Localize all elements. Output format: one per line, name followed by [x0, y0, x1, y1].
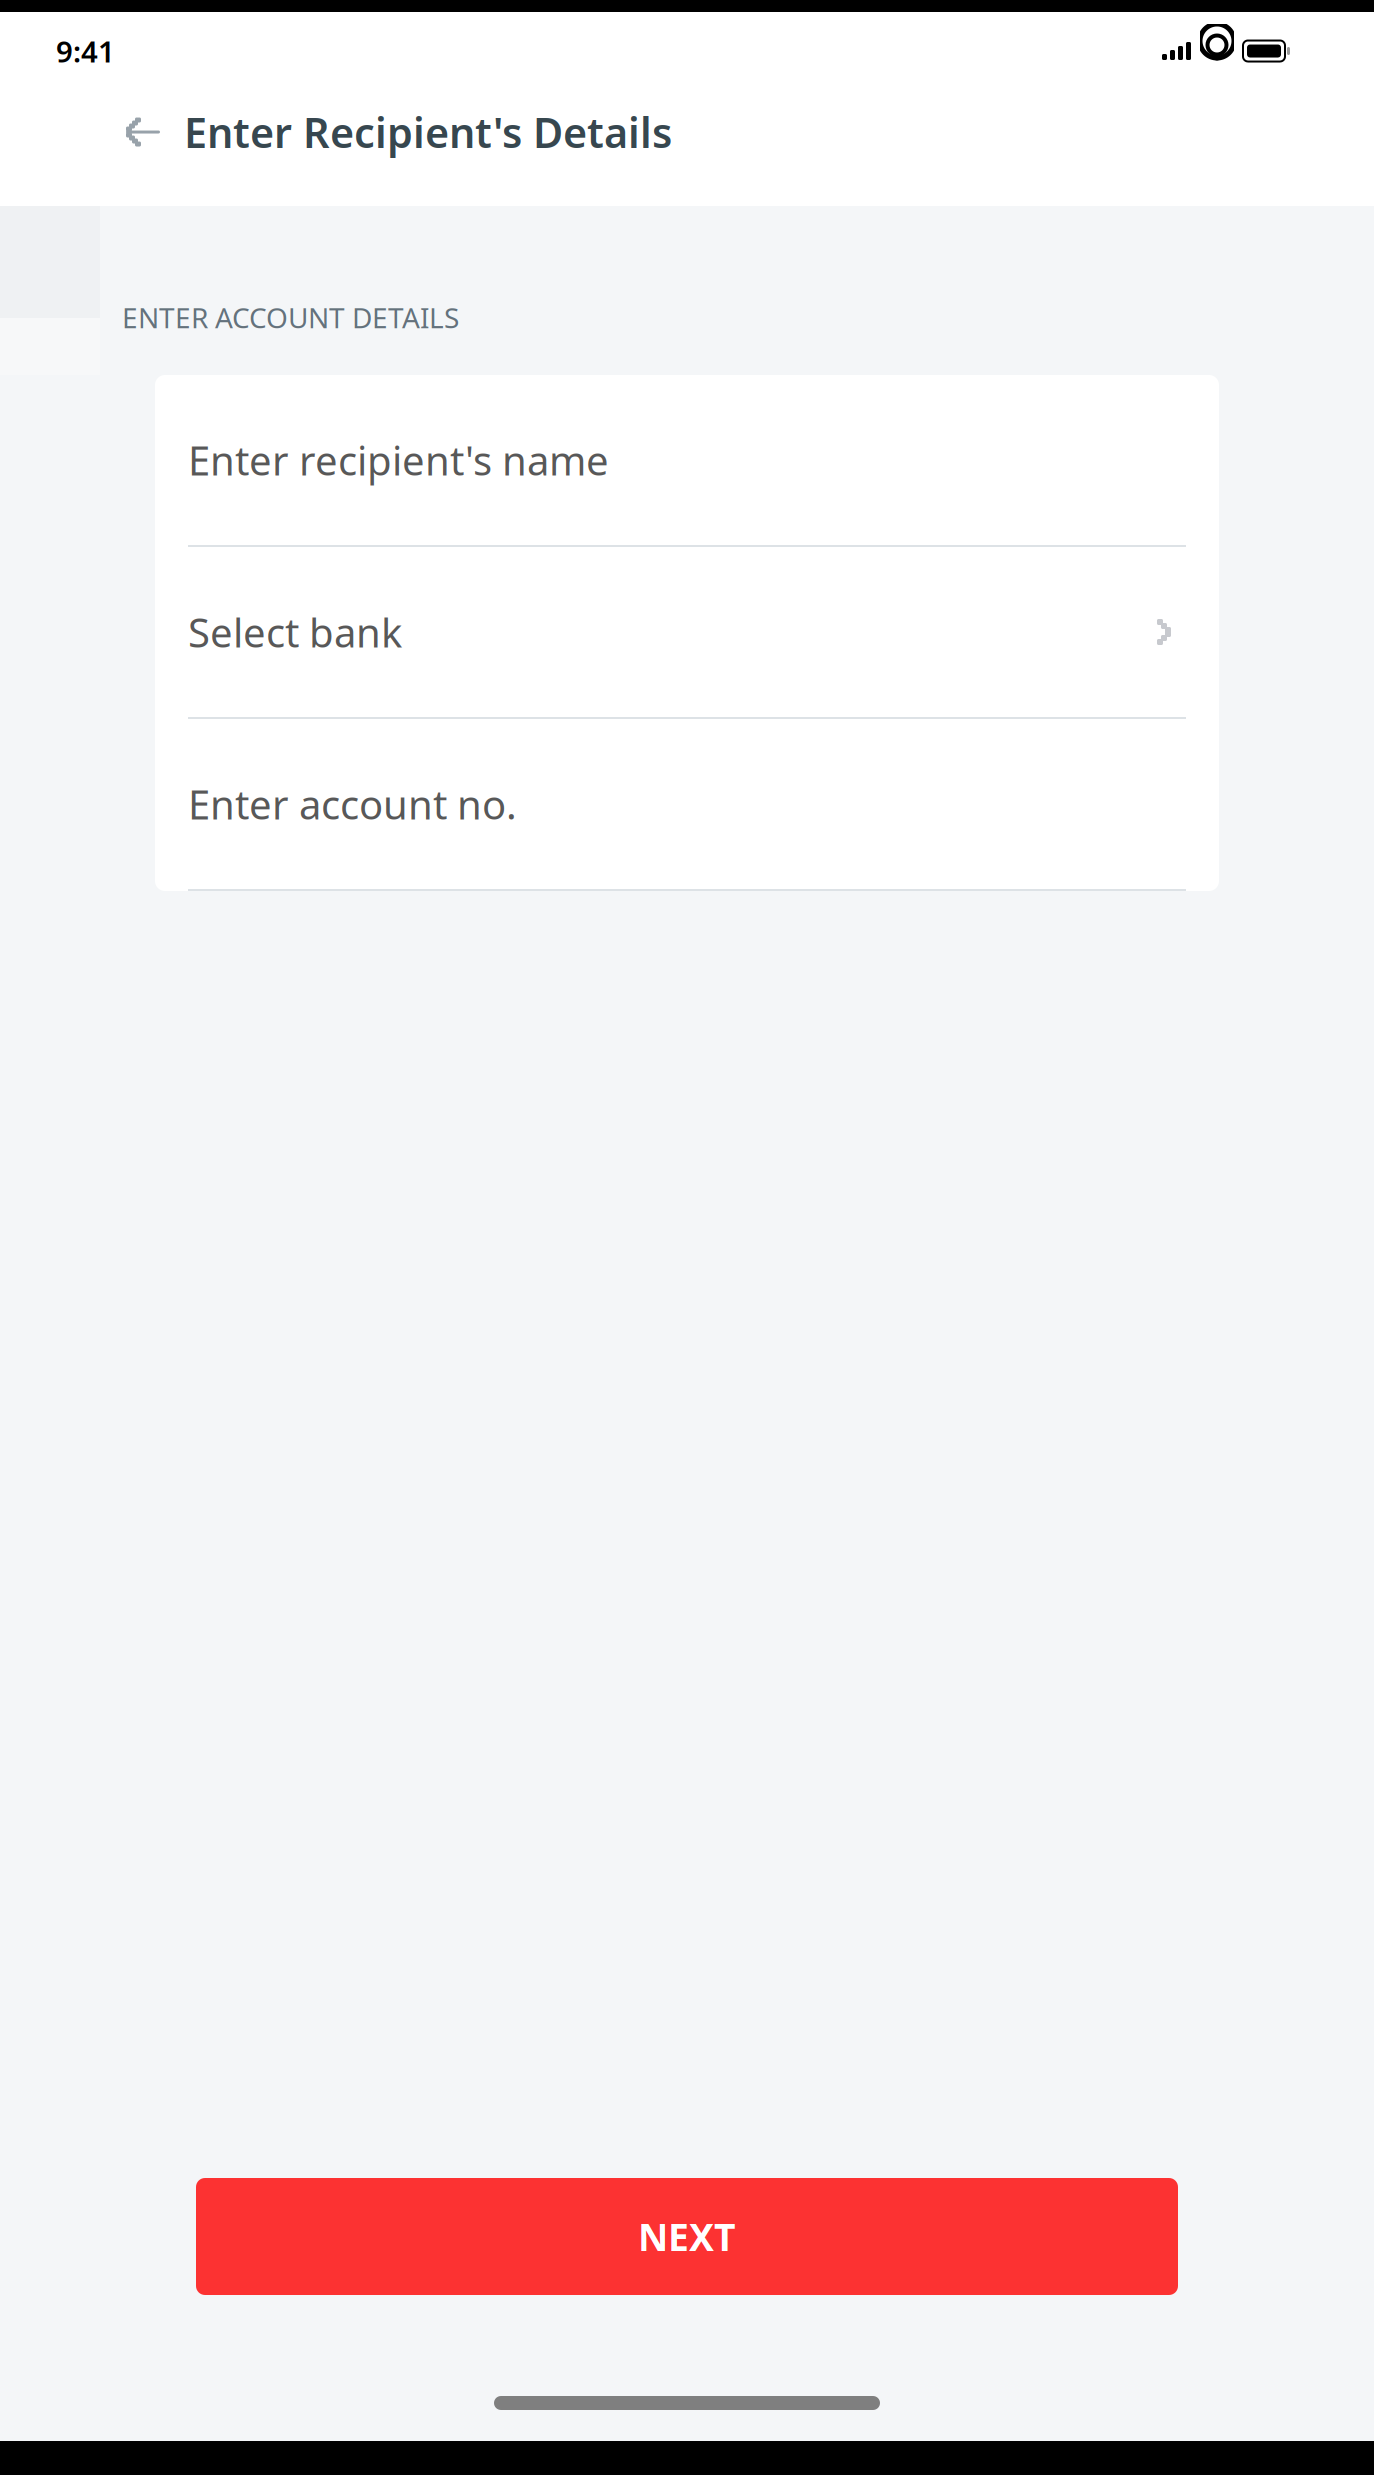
- staticText: Enter recipient's name: [188, 433, 609, 486]
- staticText: Enter Recipient's Details: [184, 105, 672, 159]
- staticText: ENTER ACCOUNT DETAILS: [122, 299, 459, 336]
- staticText: NEXT: [638, 2212, 736, 2261]
- button[interactable]: Back: [112, 101, 174, 163]
- staticText: Select bank: [188, 605, 402, 658]
- staticText: Enter account no.: [188, 777, 517, 830]
- button[interactable]: Select bank: [155, 547, 1219, 719]
- staticText: 9:41: [56, 31, 115, 70]
- button[interactable]: NEXT: [196, 2178, 1178, 2295]
